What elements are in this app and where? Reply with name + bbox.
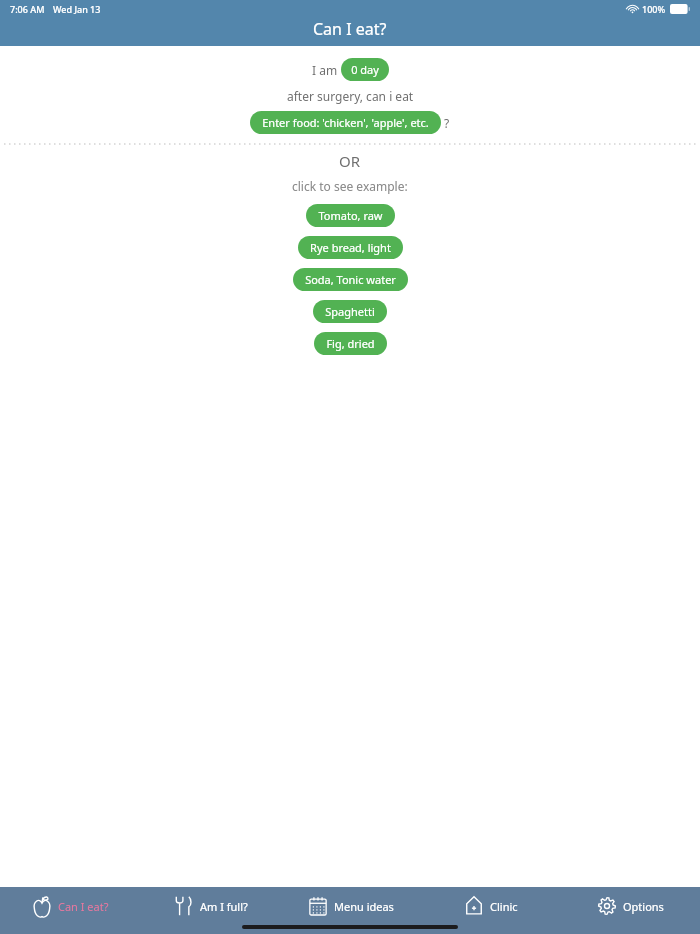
button[interactable]: Enter food: 'chicken', 'apple', etc.: [250, 111, 441, 134]
staticText: 7:06 AM: [10, 3, 45, 15]
button[interactable]: Options: [560, 887, 700, 925]
button[interactable]: Fig, dried: [314, 332, 387, 355]
staticText: Enter food: 'chicken', 'apple', etc.: [262, 115, 429, 130]
button[interactable]: Menu ideas: [280, 887, 420, 925]
staticText: 100%: [642, 3, 666, 15]
staticText: OR: [339, 151, 361, 171]
staticText: Options: [623, 899, 664, 914]
staticText: Menu ideas: [334, 899, 394, 914]
button[interactable]: Spaghetti: [313, 300, 387, 323]
button[interactable]: Am I full?: [140, 887, 280, 925]
staticText: Wed Jan 13: [53, 3, 101, 15]
staticText: Am I full?: [200, 899, 248, 914]
button[interactable]: 0 day: [341, 58, 389, 81]
button[interactable]: Tomato, raw: [306, 204, 395, 227]
staticText: ?: [441, 115, 450, 131]
staticText: after surgery, can i eat: [287, 88, 414, 104]
button[interactable]: Rye bread, light: [298, 236, 403, 259]
staticText: Clinic: [490, 899, 518, 914]
staticText: Tomato, raw: [318, 208, 383, 223]
staticText: I am: [312, 62, 341, 78]
button[interactable]: Soda, Tonic water: [293, 268, 408, 291]
staticText: Fig, dried: [326, 336, 375, 351]
button[interactable]: Can I eat?: [0, 887, 140, 925]
staticText: click to see example:: [292, 178, 408, 194]
staticText: Can I eat?: [313, 18, 387, 40]
staticText: Spaghetti: [325, 304, 375, 319]
staticText: 0 day: [351, 62, 379, 77]
staticText: Soda, Tonic water: [305, 272, 396, 287]
staticText: Can I eat?: [58, 899, 109, 914]
staticText: Rye bread, light: [310, 240, 391, 255]
button[interactable]: Clinic: [420, 887, 560, 925]
